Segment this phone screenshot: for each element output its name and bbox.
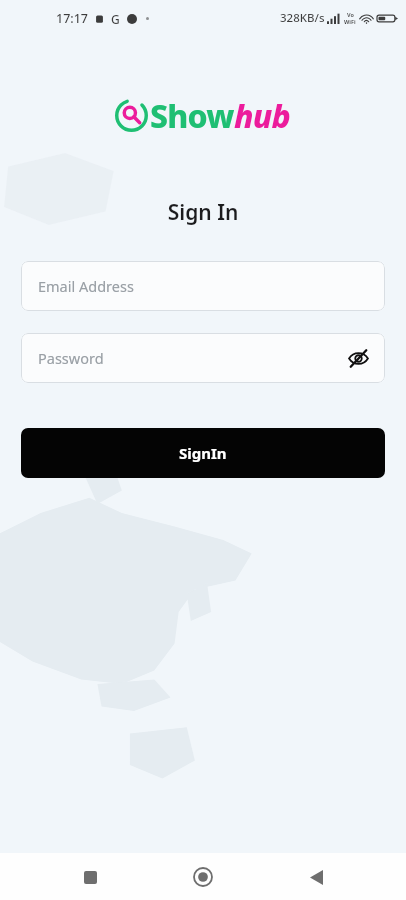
button[interactable]: Show password: [343, 343, 373, 373]
staticText: 328KB/s: [280, 10, 325, 26]
staticText: Show: [150, 94, 234, 136]
staticText: Password: [38, 348, 104, 368]
button[interactable]: Back: [293, 854, 339, 900]
staticText: hub: [234, 94, 291, 136]
button[interactable]: Password: [21, 333, 385, 383]
staticText: SignIn: [179, 443, 227, 463]
staticText: G: [111, 11, 120, 27]
button[interactable]: Home: [180, 854, 226, 900]
staticText: Email Address: [38, 276, 134, 296]
staticText: Sign In: [0, 198, 406, 227]
staticText: WiFi: [344, 18, 356, 25]
staticText: Vo: [347, 11, 354, 18]
button[interactable]: SignIn: [21, 428, 385, 478]
button[interactable]: Email Address: [21, 261, 385, 311]
staticText: 17:17: [56, 10, 89, 27]
button[interactable]: Recents: [67, 854, 113, 900]
